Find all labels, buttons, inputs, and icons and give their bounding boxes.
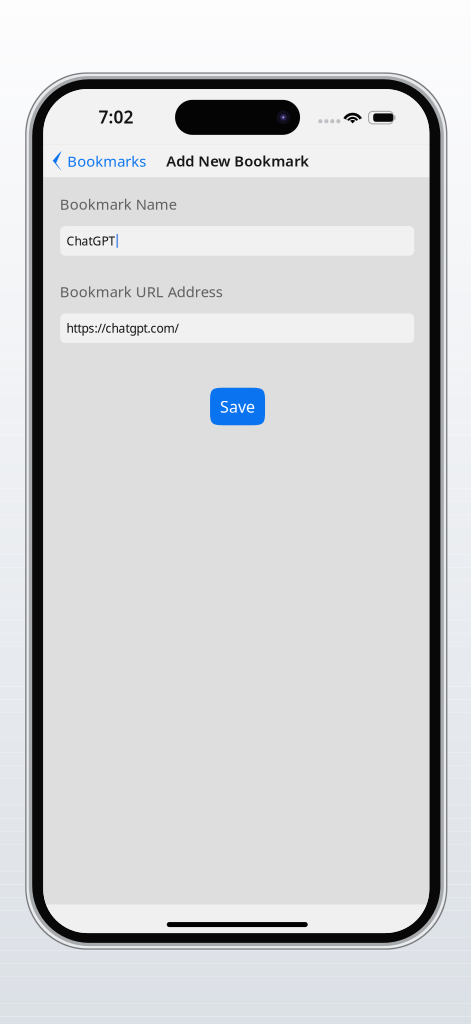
staticText: https://chatgpt.com/ bbox=[66, 320, 178, 336]
staticText: Add New Bookmark bbox=[166, 151, 309, 170]
staticText: 7:02 bbox=[98, 105, 133, 128]
staticText: Bookmarks bbox=[67, 151, 146, 171]
staticText: Bookmark URL Address bbox=[60, 282, 223, 301]
staticText: Bookmark Name bbox=[60, 194, 177, 214]
button[interactable]: Save bbox=[210, 388, 265, 425]
button[interactable]: Bookmarks bbox=[43, 144, 151, 177]
staticText: Save bbox=[220, 396, 255, 417]
staticText: ChatGPT bbox=[66, 233, 115, 249]
